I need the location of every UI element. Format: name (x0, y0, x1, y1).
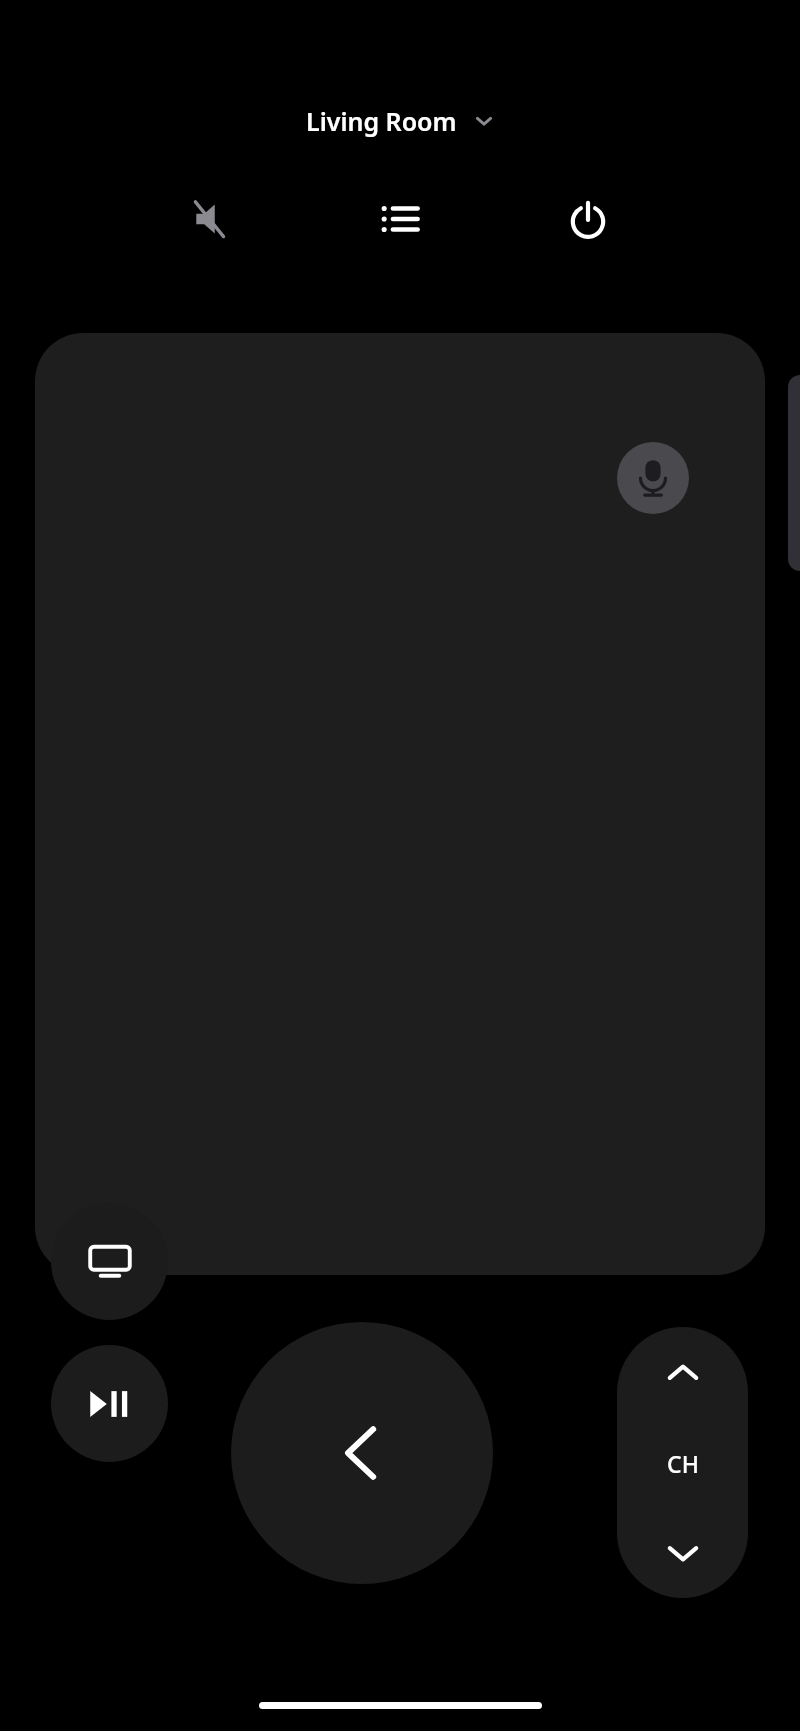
button[interactable]: Channel down (617, 1508, 748, 1598)
staticText: CH (667, 1448, 699, 1479)
button[interactable]: Play or pause (51, 1345, 168, 1462)
button[interactable]: Voice search (617, 442, 689, 514)
button[interactable]: Back (231, 1322, 493, 1584)
button[interactable]: Channel up (617, 1327, 748, 1418)
button[interactable]: Channel list (367, 186, 433, 252)
button[interactable]: Inputs (51, 1203, 168, 1320)
button[interactable]: Living Room (296, 100, 505, 142)
button[interactable]: Mute (180, 186, 246, 252)
button[interactable]: Power (555, 186, 621, 252)
staticText: Living Room (306, 104, 457, 138)
button[interactable]: Touchpad (35, 333, 765, 1275)
